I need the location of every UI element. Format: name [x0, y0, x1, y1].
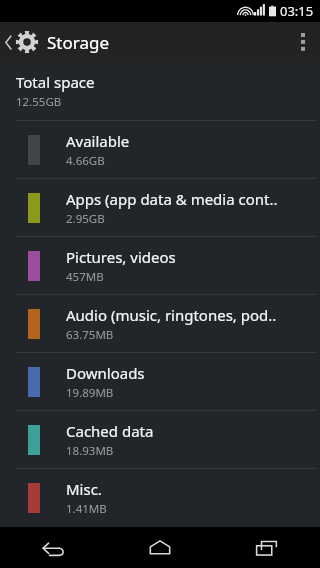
button[interactable]: Available: [0, 121, 320, 178]
staticText: 2.95GB: [66, 211, 105, 227]
staticText: 4.66GB: [66, 153, 105, 169]
staticText: 1.41MB: [66, 501, 107, 517]
staticText: Cached data: [66, 421, 154, 441]
staticText: 457MB: [66, 269, 104, 285]
button[interactable]: Recent apps: [213, 527, 320, 568]
button[interactable]: Navigate up: [0, 22, 43, 62]
staticText: 63.75MB: [66, 327, 114, 343]
staticText: Pictures, videos: [66, 247, 176, 267]
button[interactable]: Back: [0, 527, 106, 568]
staticText: Downloads: [66, 363, 145, 383]
button[interactable]: Apps (app data & media cont..: [0, 179, 320, 236]
button[interactable]: Misc.: [0, 469, 320, 526]
button[interactable]: More options: [286, 22, 320, 62]
staticText: Misc.: [66, 479, 102, 499]
button[interactable]: Audio (music, ringtones, pod..: [0, 295, 320, 352]
staticText: 19.89MB: [66, 385, 114, 401]
staticText: Audio (music, ringtones, pod..: [66, 305, 277, 325]
staticText: 03:15: [280, 2, 314, 20]
button[interactable]: Downloads: [0, 353, 320, 410]
button[interactable]: Cached data: [0, 411, 320, 468]
button[interactable]: Pictures, videos: [0, 237, 320, 294]
staticText: Apps (app data & media cont..: [66, 189, 278, 209]
button[interactable]: Home: [106, 527, 213, 568]
staticText: Total space: [16, 72, 95, 92]
staticText: 18.93MB: [66, 443, 114, 459]
staticText: Storage: [47, 31, 110, 54]
staticText: Available: [66, 131, 130, 151]
staticText: 12.55GB: [16, 94, 62, 110]
